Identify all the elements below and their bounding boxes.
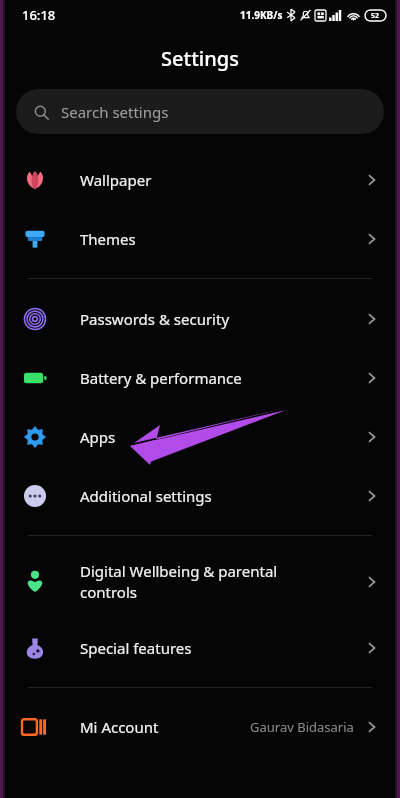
button[interactable]: Apps (0, 407, 400, 466)
staticText: Settings (161, 45, 239, 72)
staticText: 52 (371, 11, 380, 21)
button[interactable]: Digital Wellbeing & parental controls (0, 546, 400, 618)
staticText: Battery & performance (80, 368, 364, 388)
button[interactable]: Additional settings (0, 466, 400, 525)
staticText: Digital Wellbeing & parental controls (80, 561, 364, 603)
staticText: Additional settings (80, 486, 364, 506)
button[interactable]: Wallpaper (0, 150, 400, 209)
staticText: Apps (80, 427, 364, 447)
staticText: Passwords & security (80, 309, 364, 329)
button[interactable]: Special features (0, 618, 400, 677)
button[interactable]: Themes (0, 209, 400, 268)
staticText: Gaurav Bidasaria (250, 718, 354, 736)
staticText: 16:18 (22, 6, 56, 24)
staticText: Themes (80, 229, 364, 249)
button[interactable]: Passwords & security (0, 289, 400, 348)
other: Annotation arrow (0, 0, 400, 798)
staticText: Search settings (61, 102, 169, 122)
staticText: 11.9KB/s (240, 8, 283, 22)
button[interactable]: Battery & performance (0, 348, 400, 407)
button[interactable]: Search settings (16, 89, 384, 134)
staticText: Special features (80, 638, 364, 658)
staticText: Wallpaper (80, 170, 364, 190)
staticText: Mi Account (80, 717, 159, 737)
button[interactable]: Mi Account (0, 698, 400, 756)
